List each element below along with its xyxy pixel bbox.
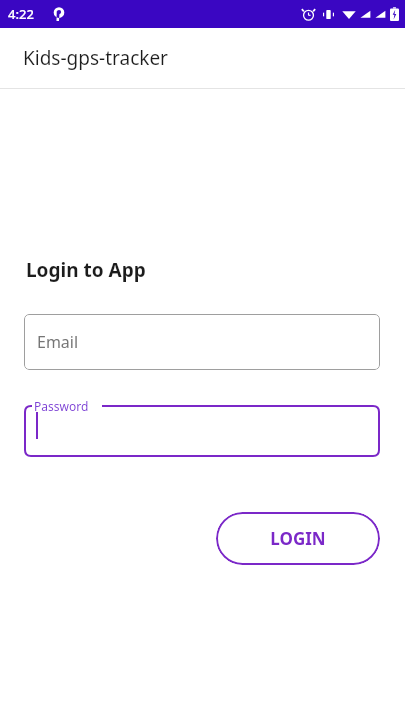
staticText: 4:22 bbox=[8, 5, 34, 23]
button[interactable]: Password bbox=[24, 397, 380, 457]
staticText: Password bbox=[34, 398, 89, 414]
staticText: Kids-gps-tracker bbox=[23, 45, 168, 71]
staticText: LOGIN bbox=[270, 527, 326, 550]
staticText: Email bbox=[37, 331, 79, 353]
button[interactable]: Email bbox=[24, 314, 380, 370]
staticText: Login to App bbox=[26, 257, 146, 283]
button[interactable]: LOGIN bbox=[216, 512, 380, 565]
